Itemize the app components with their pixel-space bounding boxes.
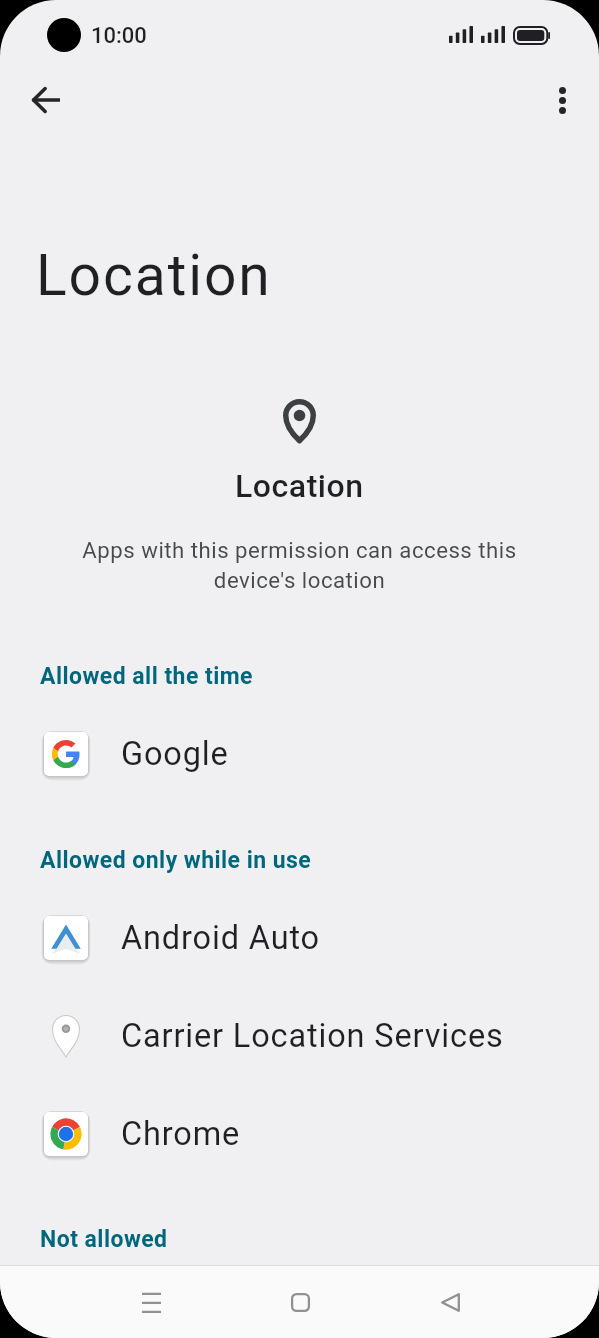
staticText: Chrome — [121, 1115, 241, 1153]
button[interactable]: Recent apps — [115, 1266, 187, 1338]
staticText: Google — [121, 735, 229, 773]
staticText: Location — [235, 467, 364, 505]
staticText: Android Auto — [121, 919, 320, 957]
button[interactable]: Home — [264, 1266, 336, 1338]
staticText: Not allowed — [40, 1226, 168, 1253]
button[interactable]: Chrome — [0, 1085, 599, 1183]
staticText: 10:00 — [91, 23, 147, 49]
staticText: Allowed all the time — [40, 663, 254, 690]
button[interactable]: More options — [534, 72, 590, 128]
staticText: Allowed only while in use — [40, 847, 312, 874]
button[interactable]: Carrier Location Services — [0, 987, 599, 1085]
staticText: Carrier Location Services — [121, 1017, 504, 1055]
button[interactable]: Back — [414, 1266, 486, 1338]
button[interactable]: Android Auto — [0, 889, 599, 987]
staticText: Apps with this permission can access thi… — [74, 537, 525, 593]
button[interactable]: Back — [18, 72, 74, 128]
staticText: Location — [36, 242, 272, 309]
button[interactable]: Google — [0, 705, 599, 803]
